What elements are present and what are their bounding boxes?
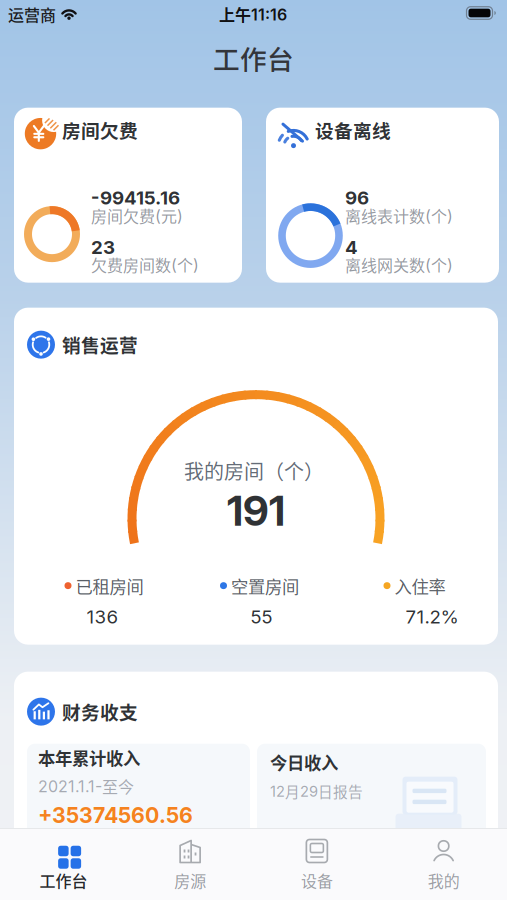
button[interactable]: 设备离线 <box>266 108 499 283</box>
staticText: +35374560.56 <box>38 803 193 828</box>
staticText: 已租房间 <box>75 573 143 598</box>
staticText: 空置房间 <box>231 573 299 598</box>
staticText: 我的房间（个） <box>184 456 324 485</box>
button[interactable]: 房源 <box>127 839 254 892</box>
staticText: 财务收支 <box>62 698 138 724</box>
staticText: 55 <box>250 606 272 628</box>
staticText: -99415.16 <box>91 187 180 209</box>
staticText: 上午11:16 <box>219 3 287 25</box>
button[interactable]: 我的 <box>380 839 507 892</box>
button[interactable]: 设备 <box>253 839 380 892</box>
staticText: 71.2% <box>405 606 458 628</box>
staticText: 离线表计数(个) <box>345 204 453 227</box>
staticText: 设备 <box>301 869 333 892</box>
button[interactable]: 房间欠费 <box>14 108 242 283</box>
staticText: 本年累计收入 <box>38 745 140 770</box>
staticText: 2021.1.1-至今 <box>38 775 134 797</box>
button[interactable]: 今日收入 <box>257 744 486 840</box>
button[interactable]: 本年累计收入 <box>27 744 250 840</box>
staticText: 4 <box>345 236 358 258</box>
staticText: 销售运营 <box>62 331 138 357</box>
staticText: 房间欠费 <box>62 117 138 143</box>
staticText: 今日收入 <box>270 750 338 774</box>
staticText: 23 <box>91 236 115 258</box>
staticText: 工作台 <box>213 39 294 77</box>
staticText: 欠费房间数(个) <box>91 253 199 276</box>
staticText: 入住率 <box>394 573 445 598</box>
staticText: 191 <box>227 486 285 535</box>
staticText: 房间欠费(元) <box>91 204 183 227</box>
staticText: 96 <box>345 187 369 209</box>
staticText: 我的 <box>428 869 460 892</box>
staticText: 12月29日报告 <box>270 781 363 801</box>
staticText: 离线网关数(个) <box>345 253 453 276</box>
button[interactable]: 工作台 <box>0 839 127 892</box>
staticText: 运营商 <box>8 3 56 26</box>
staticText: 房源 <box>174 869 206 892</box>
staticText: 工作台 <box>39 869 87 892</box>
staticText: 设备离线 <box>315 117 391 143</box>
staticText: 136 <box>86 606 118 628</box>
